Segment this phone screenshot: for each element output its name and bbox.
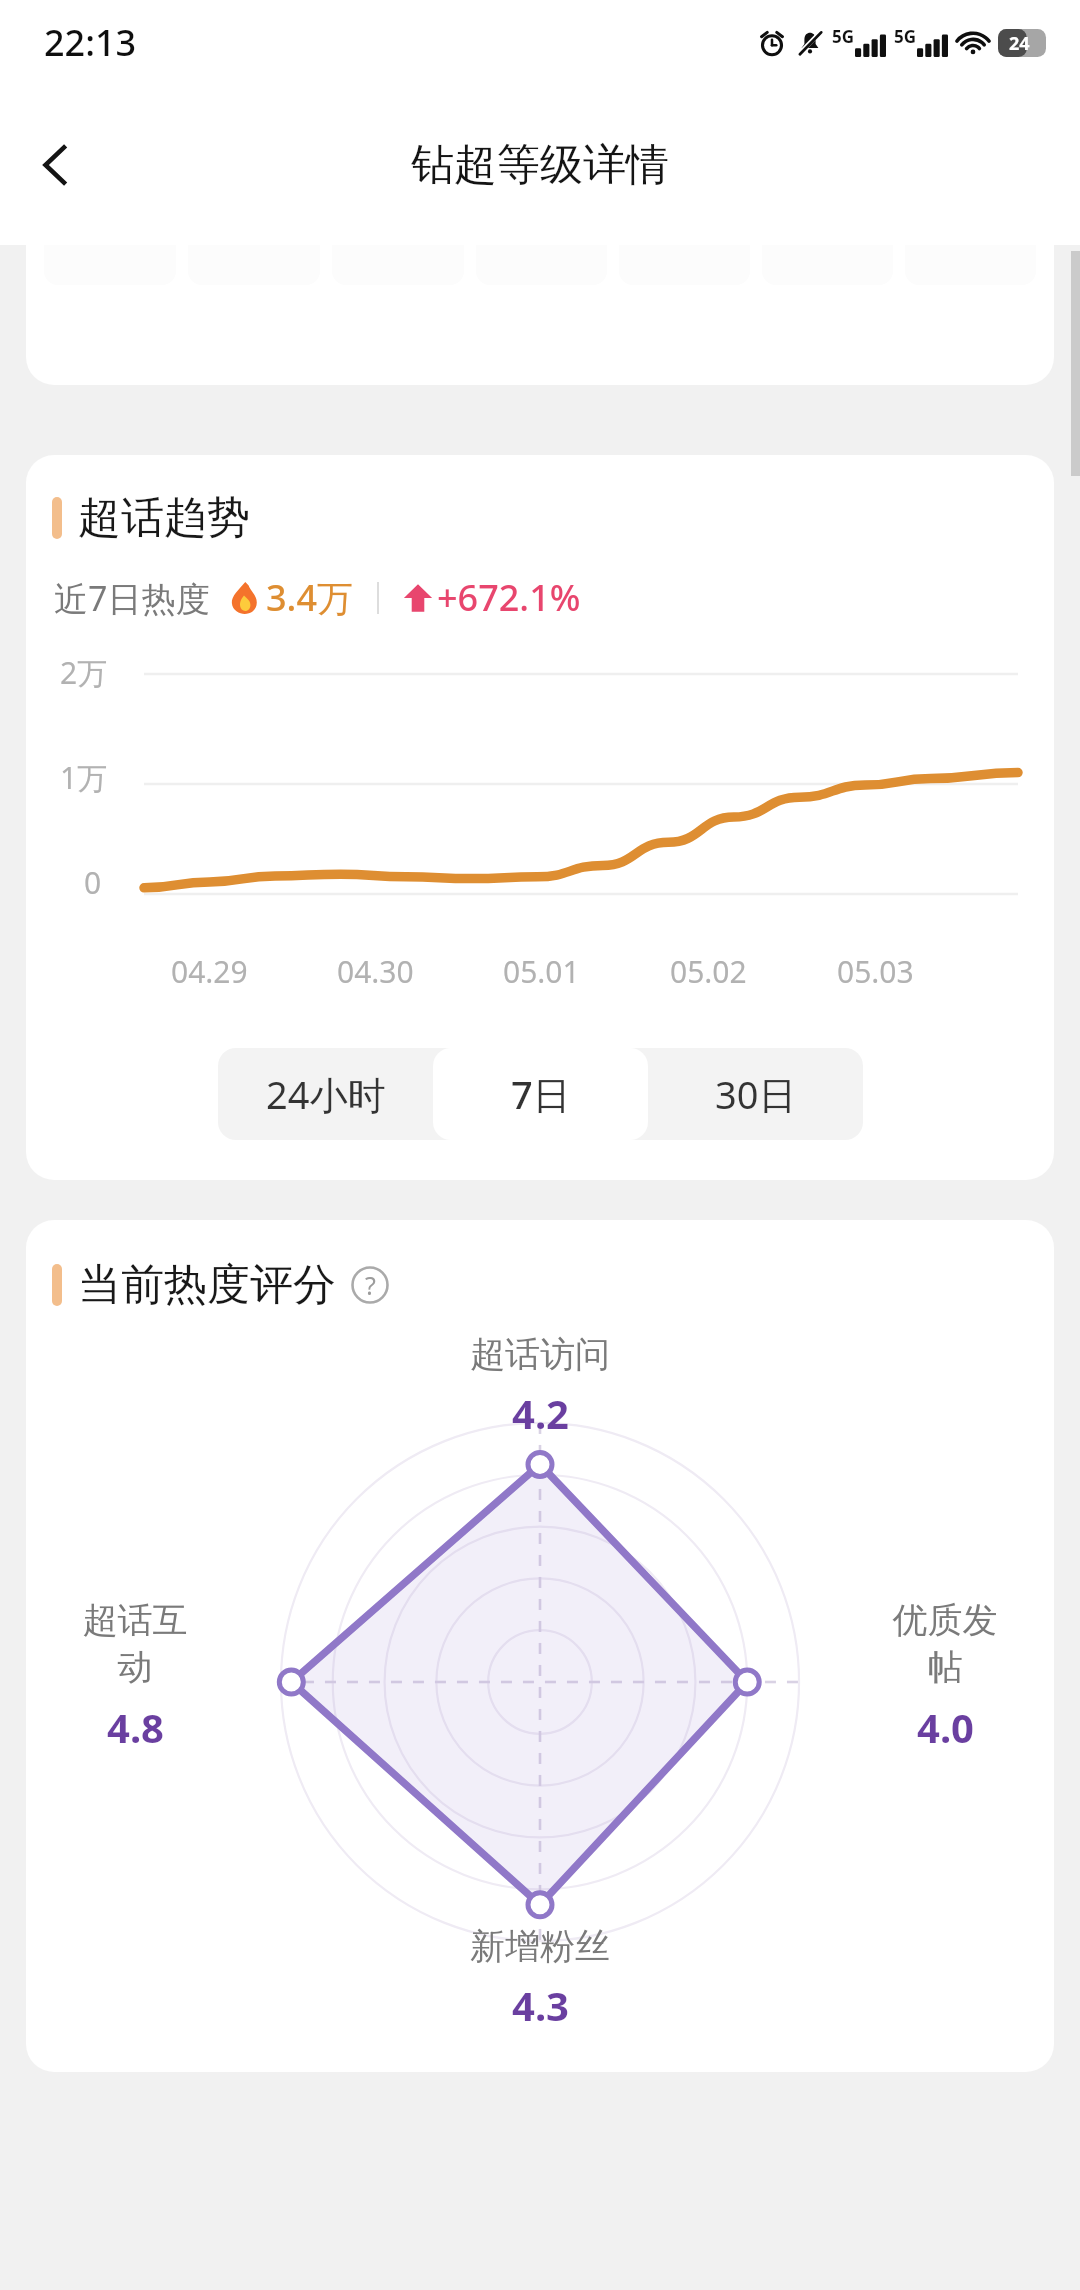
staticText: 超话互动 [70, 1598, 200, 1690]
staticText: 0 [84, 862, 102, 903]
staticText: 超话访问 [470, 1332, 610, 1376]
staticText: +672.1% [437, 573, 581, 622]
staticText: 05.02 [670, 951, 747, 992]
staticText: 3.4万 [266, 573, 353, 622]
staticText: 4.0 [917, 1700, 974, 1754]
staticText: 05.01 [503, 951, 580, 992]
button[interactable]: 30日 [648, 1048, 863, 1140]
staticText: 30日 [715, 1068, 797, 1120]
staticText: 4.8 [107, 1700, 164, 1754]
staticText: 4.2 [512, 1386, 569, 1440]
staticText: 04.29 [171, 951, 248, 992]
staticText: 2万 [60, 652, 108, 693]
staticText: 24 [1009, 31, 1030, 56]
staticText: 4.3 [512, 1978, 569, 2032]
staticText: 当前热度评分 [78, 1258, 336, 1312]
staticText: 5G [894, 25, 917, 48]
staticText: ? [365, 1268, 376, 1302]
staticText: 04.30 [337, 951, 414, 992]
staticText: 22:13 [44, 18, 137, 67]
button[interactable]: 7日 [433, 1048, 648, 1140]
staticText: 1万 [60, 757, 108, 798]
staticText: 05.03 [837, 951, 914, 992]
button[interactable]: Info [348, 1263, 392, 1307]
button[interactable]: 24小时 [218, 1048, 433, 1140]
staticText: 优质发帖 [880, 1598, 1010, 1690]
staticText: 近7日热度 [54, 575, 210, 621]
staticText: 24小时 [266, 1068, 386, 1120]
staticText: 7日 [511, 1068, 571, 1120]
staticText: 5G [832, 25, 855, 48]
staticText: 超话趋势 [78, 491, 250, 545]
button[interactable]: Back [12, 120, 102, 210]
staticText: 钻超等级详情 [411, 138, 669, 192]
staticText: 新增粉丝 [470, 1924, 610, 1968]
